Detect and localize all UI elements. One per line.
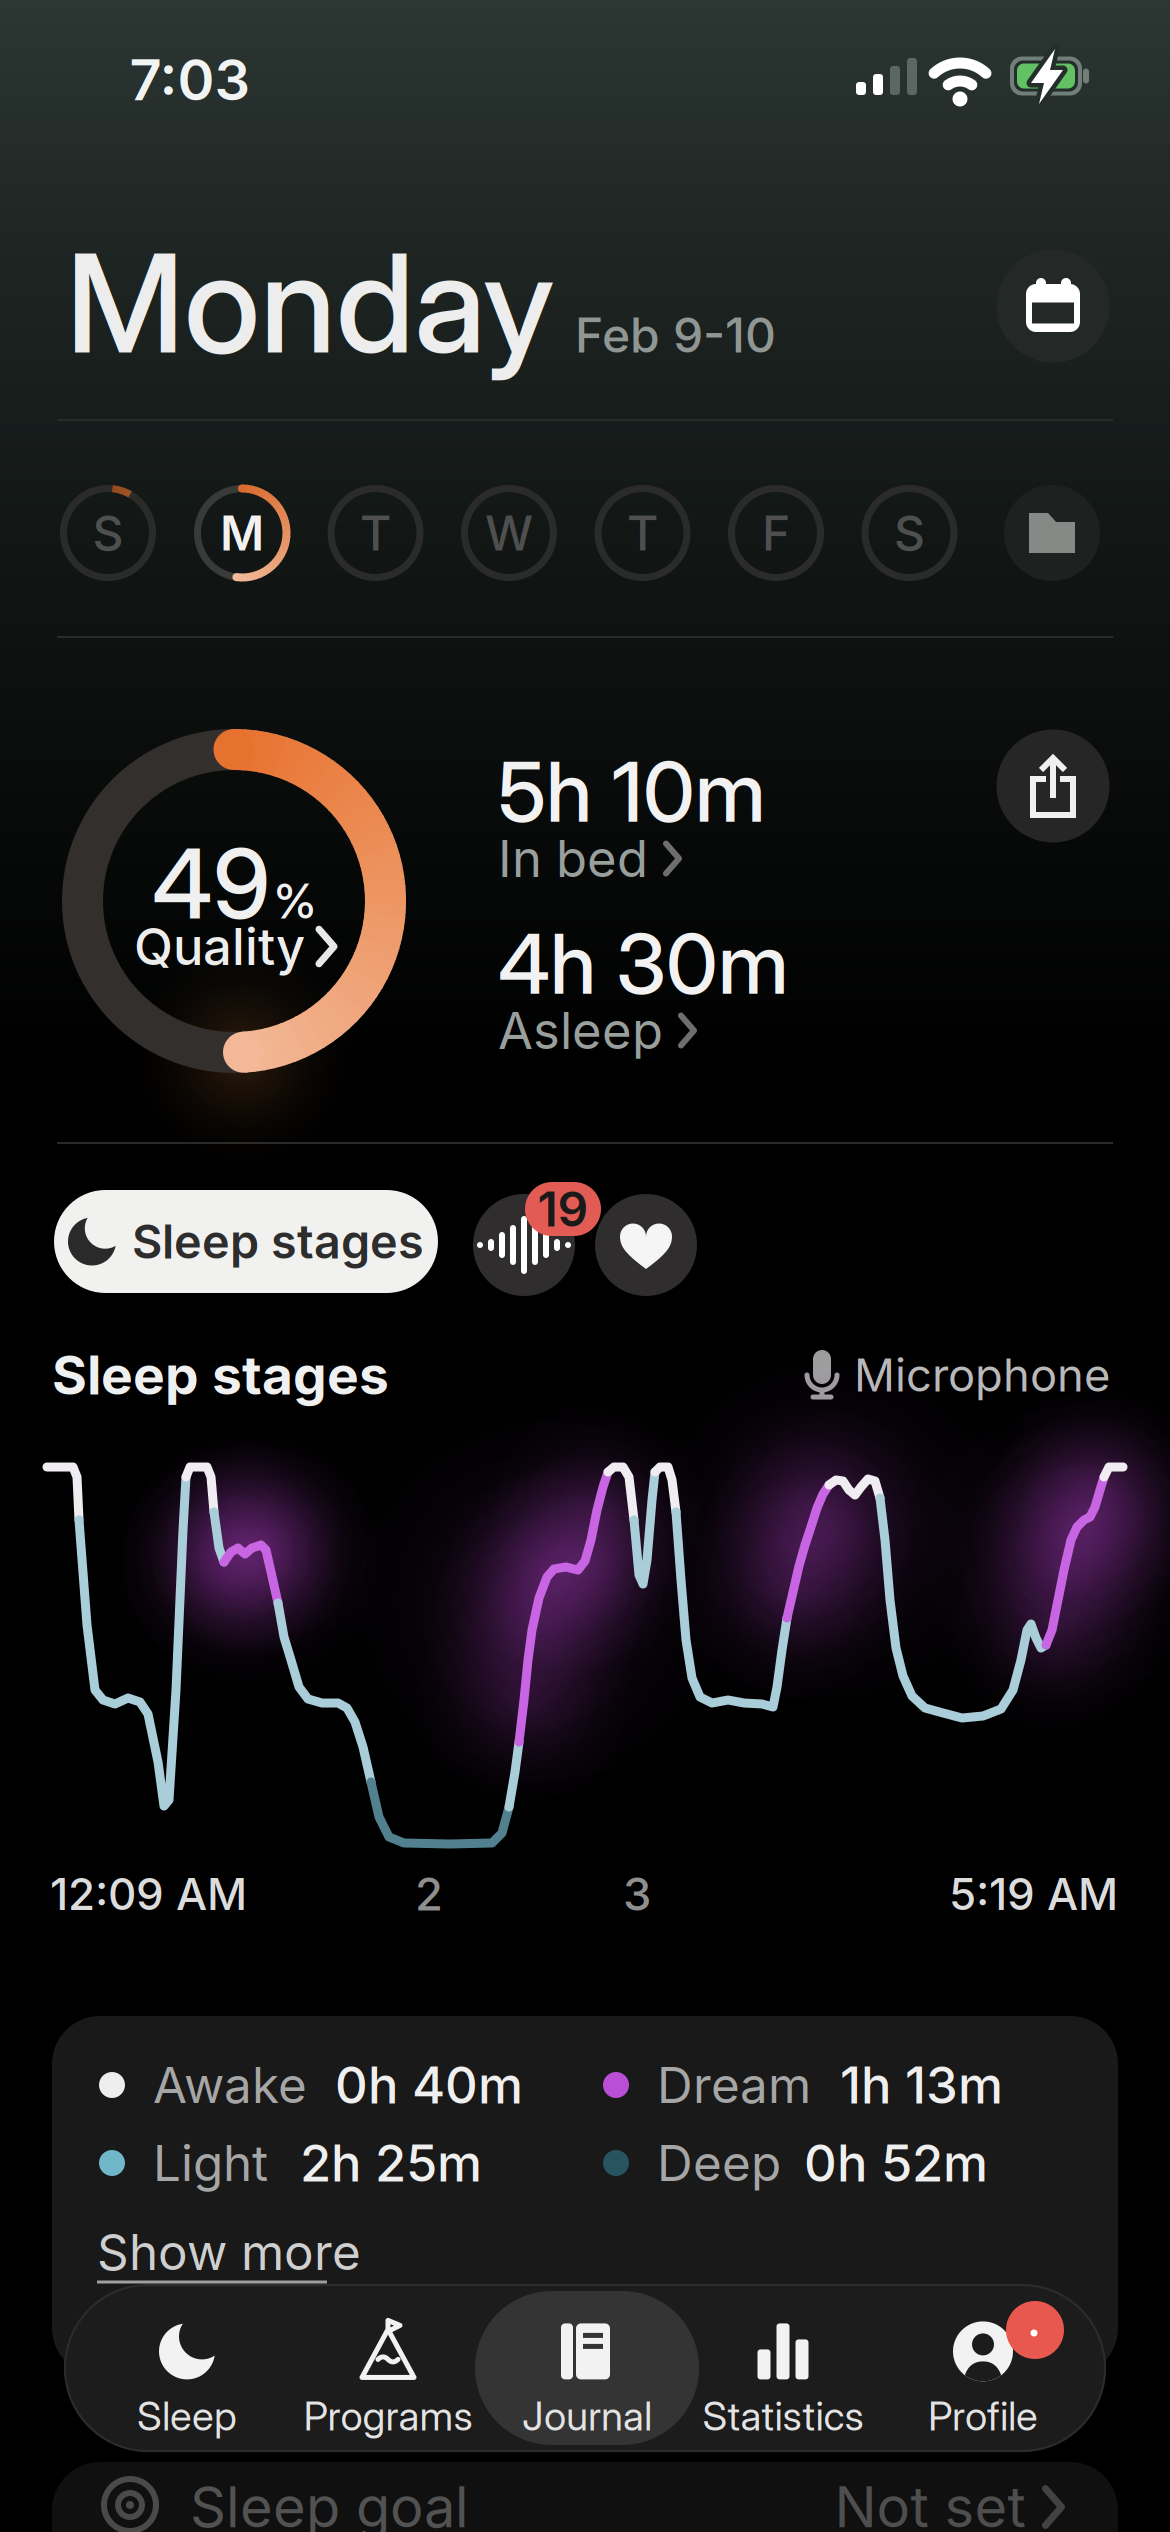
staticText: S xyxy=(894,505,925,561)
staticText: Asleep xyxy=(498,1001,663,1060)
staticText: Feb 9-10 xyxy=(575,307,776,363)
button[interactable]: Microphone xyxy=(804,1348,1110,1402)
staticText: Sleep stages xyxy=(132,1214,424,1269)
staticText: T xyxy=(360,505,391,561)
staticText: 5:19 AM xyxy=(949,1868,1118,1920)
button[interactable]: 5h 10m xyxy=(498,742,918,888)
staticText: 5h 10m xyxy=(498,742,766,842)
button[interactable]: T xyxy=(594,485,690,581)
button[interactable] xyxy=(996,249,1109,362)
staticText: Quality xyxy=(134,917,305,976)
button[interactable] xyxy=(1004,485,1100,581)
staticText: 7:03 xyxy=(129,47,250,113)
staticText: 2h 25m xyxy=(300,2133,482,2193)
staticText: Journal xyxy=(522,2392,652,2440)
button[interactable]: W xyxy=(461,485,557,581)
staticText: M xyxy=(220,505,264,561)
staticText: In bed xyxy=(498,829,648,888)
staticText: Programs xyxy=(303,2392,472,2440)
staticText: Microphone xyxy=(854,1348,1110,1402)
button[interactable]: S xyxy=(60,485,156,581)
button[interactable]: 4h 30m xyxy=(498,914,918,1060)
staticText: Profile xyxy=(928,2392,1038,2440)
staticText: S xyxy=(92,505,123,561)
button[interactable]: Show more xyxy=(97,2217,397,2287)
staticText: 0h 52m xyxy=(804,2133,988,2193)
button[interactable]: F xyxy=(728,485,824,581)
button[interactable] xyxy=(595,1194,697,1296)
button[interactable]: Sleep stages xyxy=(54,1190,438,1293)
staticText: 19 xyxy=(537,1181,588,1237)
button[interactable] xyxy=(473,1194,575,1296)
button[interactable] xyxy=(52,2462,1118,2532)
staticText: 0h 40m xyxy=(335,2055,523,2115)
button[interactable] xyxy=(996,729,1109,842)
staticText: T xyxy=(627,505,658,561)
staticText: 49 xyxy=(152,825,270,942)
staticText: 2 xyxy=(415,1867,443,1921)
button[interactable]: Journal xyxy=(522,2320,652,2440)
button[interactable]: S xyxy=(861,485,957,581)
staticText: W xyxy=(485,505,533,561)
staticText: Sleep stages xyxy=(52,1343,389,1406)
button[interactable]: Programs xyxy=(303,2320,472,2440)
staticText: F xyxy=(762,505,790,561)
staticText: Not set xyxy=(834,2474,1025,2532)
staticText: Sleep goal xyxy=(190,2474,469,2532)
staticText: Monday xyxy=(66,221,555,385)
button[interactable]: T xyxy=(327,485,423,581)
staticText: Light xyxy=(153,2134,268,2192)
staticText: Dream xyxy=(657,2056,811,2114)
staticText: Show more xyxy=(97,2223,361,2281)
staticText: 1h 13m xyxy=(840,2055,1003,2115)
button[interactable]: Statistics xyxy=(702,2320,863,2440)
staticText: Awake xyxy=(153,2056,307,2114)
button[interactable]: 49 xyxy=(74,814,394,1014)
staticText: Deep xyxy=(657,2134,781,2192)
staticText: % xyxy=(274,872,316,930)
staticText: 3 xyxy=(623,1867,651,1921)
staticText: Statistics xyxy=(702,2392,863,2440)
staticText: Sleep xyxy=(137,2392,237,2440)
staticText: 12:09 AM xyxy=(50,1868,247,1920)
staticText: 4h 30m xyxy=(498,914,789,1014)
button[interactable]: M xyxy=(194,485,290,581)
button[interactable]: Profile xyxy=(928,2320,1038,2440)
button[interactable]: Sleep xyxy=(137,2320,237,2440)
